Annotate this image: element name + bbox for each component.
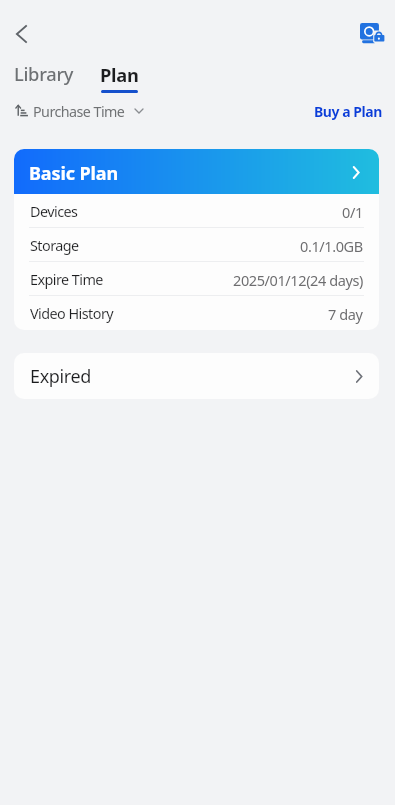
staticText: Library [14,61,74,86]
button[interactable]: Devices [14,194,379,228]
staticText: 7 day [328,304,363,324]
button[interactable]: Back [1,14,41,54]
button[interactable]: Expire Time [14,262,379,296]
button[interactable]: Library [5,60,83,86]
staticText: Expired [30,364,92,389]
staticText: Basic Plan [29,161,118,186]
button[interactable]: Expired [14,353,379,399]
staticText: 0/1 [342,202,363,222]
staticText: Plan [100,62,139,87]
staticText: Video History [30,304,114,324]
button[interactable]: Basic Plan [14,149,379,194]
staticText: 2025/01/12(24 days) [233,270,363,290]
button[interactable]: Plan [90,62,149,93]
button[interactable]: Storage [14,228,379,262]
staticText: Devices [30,202,78,222]
button[interactable]: Purchase Time [14,100,143,122]
staticText: Purchase Time [33,102,125,121]
staticText: Expire Time [30,270,103,290]
staticText: Buy a Plan [314,102,382,121]
button[interactable]: Video History [14,296,379,330]
staticText: Storage [30,236,79,256]
button[interactable]: Secure camera [352,13,392,53]
button[interactable]: Buy a Plan [299,100,395,122]
staticText: 0.1/1.0GB [300,236,363,256]
